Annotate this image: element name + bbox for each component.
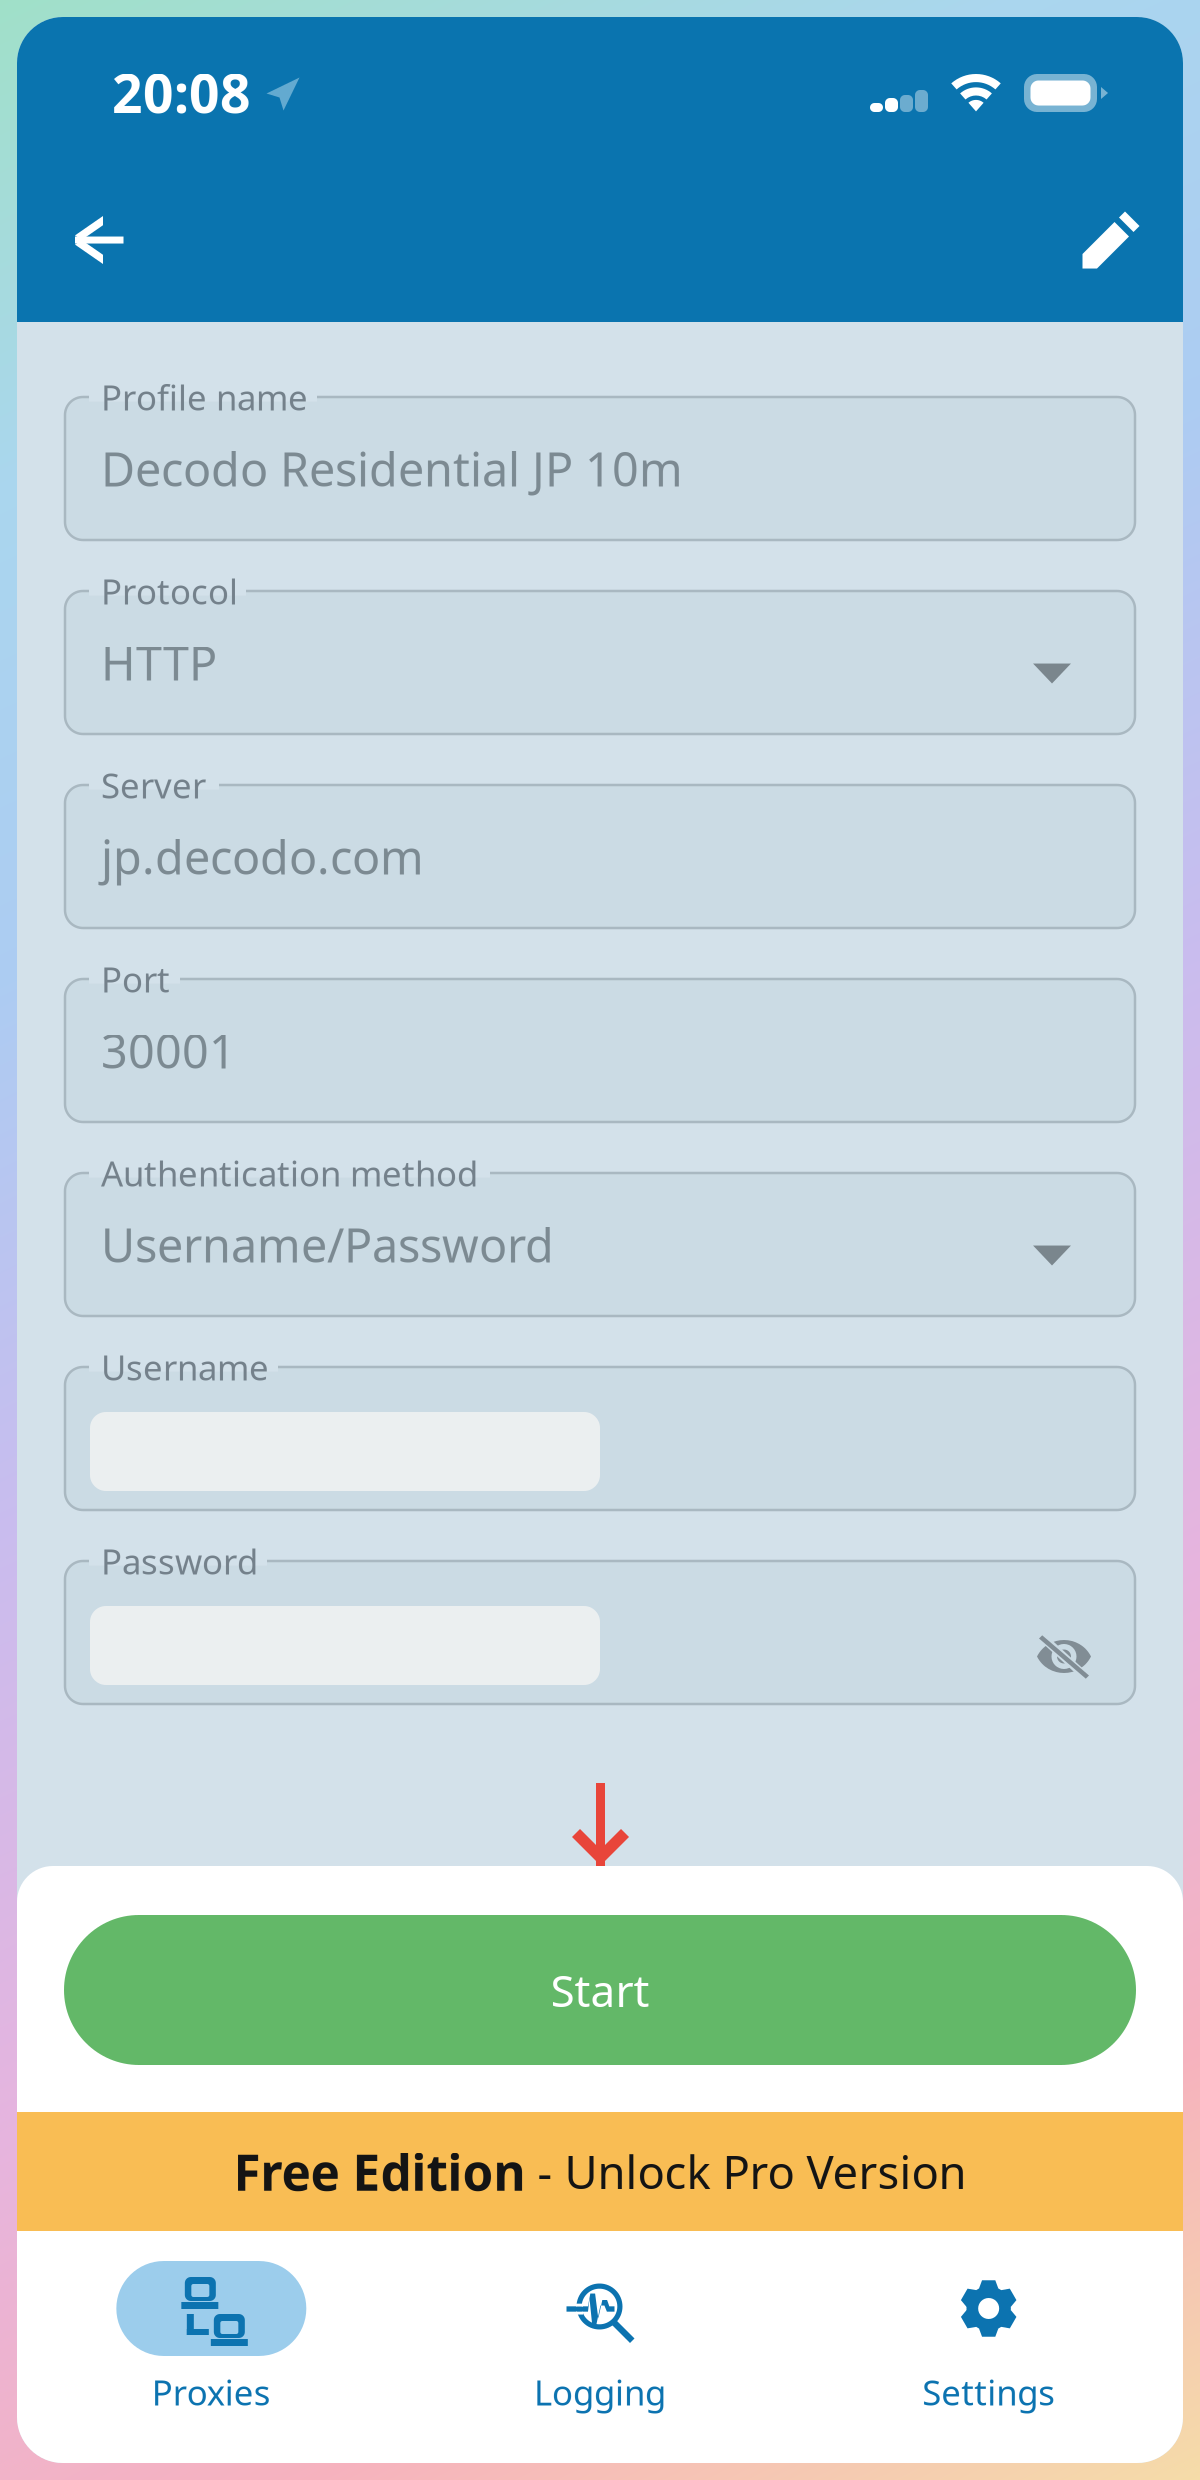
staticText: Authentication method <box>101 1150 478 1196</box>
button[interactable]: Free Edition <box>17 2112 1183 2231</box>
staticText: Protocol <box>101 568 238 614</box>
staticText: Decodo Residential JP 10m <box>101 437 683 499</box>
staticText: Profile name <box>101 374 308 420</box>
button[interactable]: Edit profile <box>1056 185 1166 295</box>
button[interactable]: Show password <box>1036 1633 1092 1680</box>
staticText: HTTP <box>101 631 217 693</box>
button[interactable]: Logging <box>406 2231 794 2480</box>
staticText: Port <box>101 956 170 1002</box>
staticText: Password <box>101 1538 258 1584</box>
button[interactable]: Start <box>64 1915 1136 2065</box>
staticText: Username <box>101 1344 269 1390</box>
button[interactable]: Settings <box>794 2231 1183 2480</box>
staticText: 30001 <box>101 1019 236 1081</box>
staticText: Start <box>550 1961 649 2019</box>
staticText: 20:08 <box>112 57 251 128</box>
staticText: Logging <box>534 2369 666 2415</box>
staticText: jp.decodo.com <box>101 825 424 887</box>
button[interactable]: Proxies <box>17 2231 406 2480</box>
button[interactable]: Back <box>44 185 154 295</box>
staticText: Proxies <box>152 2369 271 2415</box>
staticText: Settings <box>922 2369 1055 2415</box>
staticText: - Unlock Pro Version <box>525 2141 966 2202</box>
staticText: Username/Password <box>101 1213 554 1275</box>
staticText: Free Edition <box>233 2139 525 2204</box>
staticText: Server <box>101 762 206 808</box>
